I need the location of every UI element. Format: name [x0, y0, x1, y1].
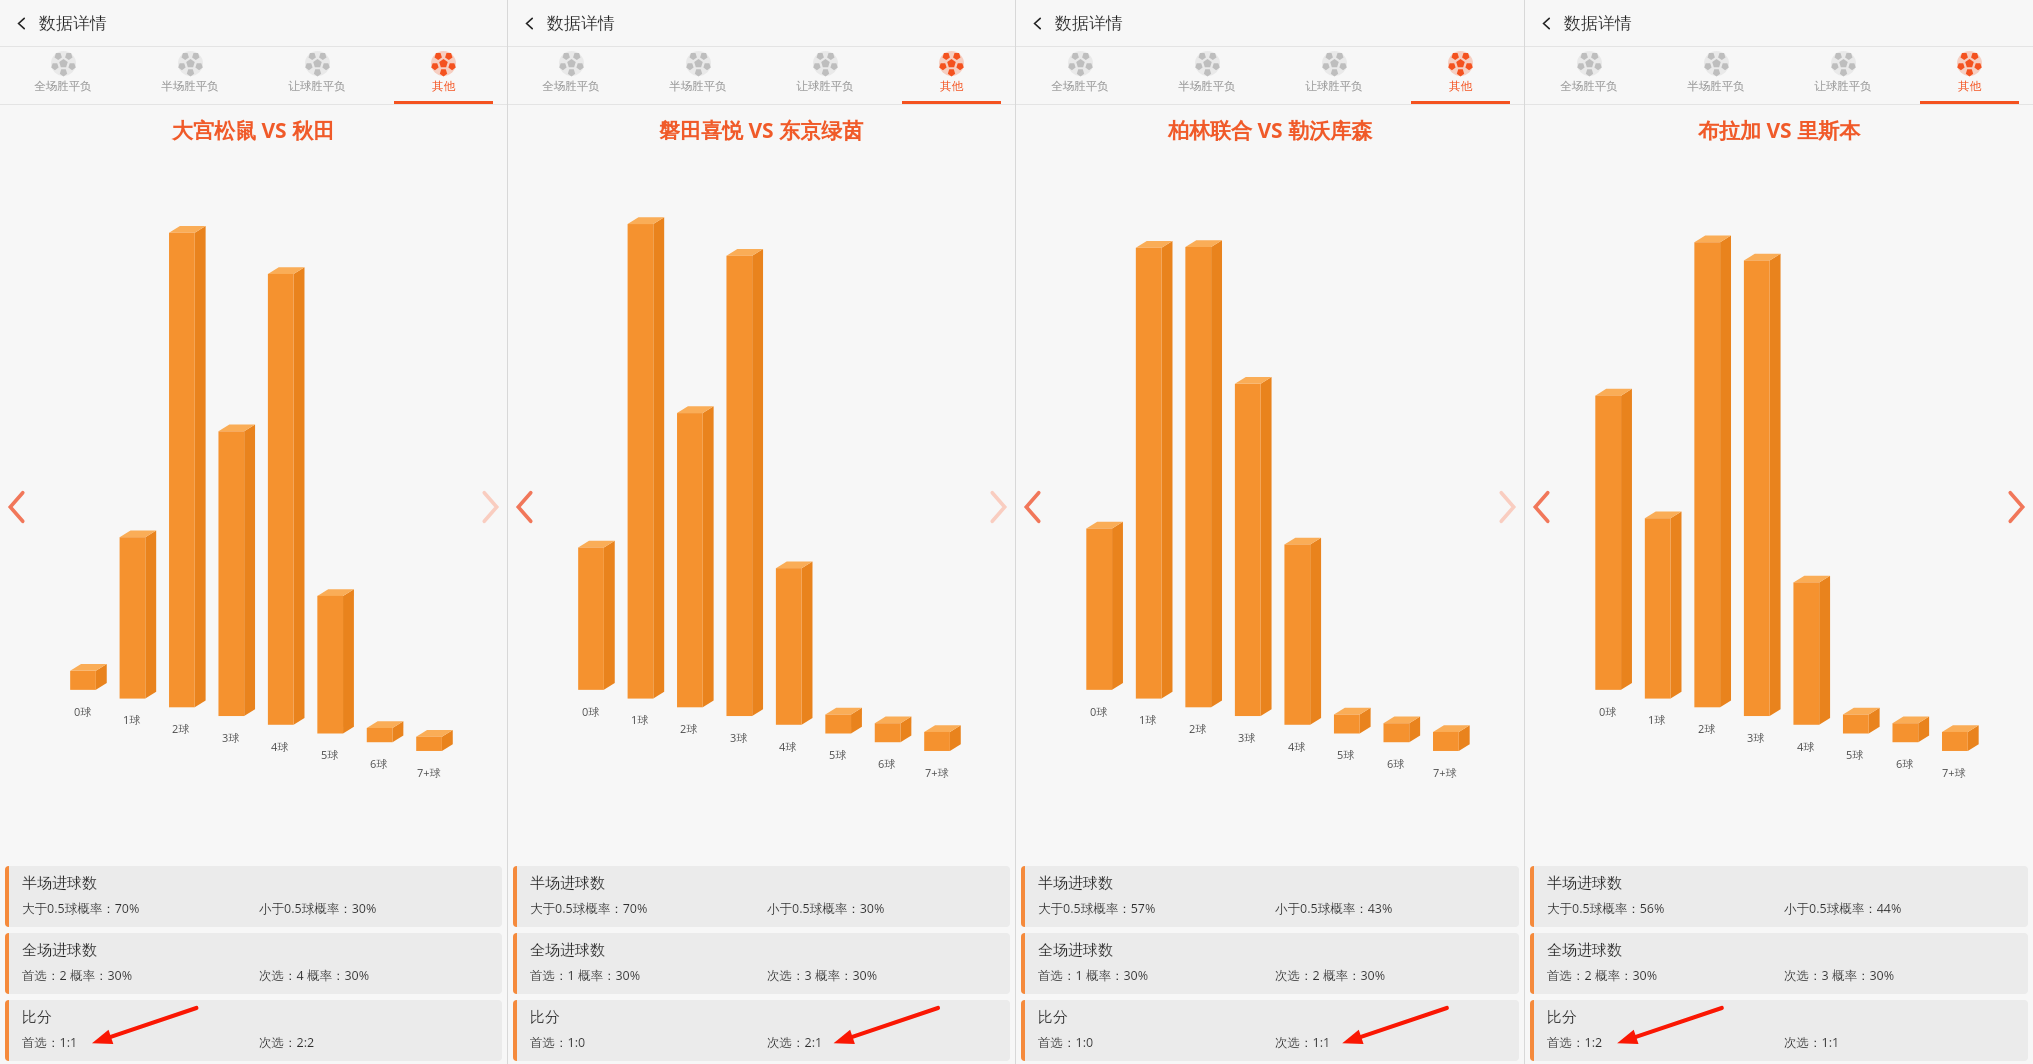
- staticText: 全场胜平负: [1560, 79, 1618, 93]
- button[interactable]: 全场进球数: [1530, 933, 2028, 994]
- staticText: 半场胜平负: [1687, 79, 1745, 93]
- staticText: 数据详情: [1055, 13, 1123, 34]
- button[interactable]: 半场进球数: [5, 866, 502, 927]
- button[interactable]: 半场胜平负: [634, 47, 761, 104]
- button[interactable]: 全场胜平负: [508, 47, 634, 104]
- button[interactable]: 让球胜平负: [1270, 47, 1397, 104]
- button[interactable]: Back: [508, 0, 1015, 46]
- button[interactable]: 比分: [1530, 1000, 2028, 1061]
- staticText: 让球胜平负: [288, 79, 346, 93]
- button[interactable]: 其他: [380, 47, 507, 104]
- staticText: 柏林联合 VS 勒沃库森: [1168, 116, 1373, 145]
- staticText: 全场进球数: [22, 941, 97, 960]
- staticText: 2球: [680, 721, 698, 736]
- staticText: 数据详情: [1564, 13, 1632, 34]
- staticText: 首选：1 概率：30%: [530, 967, 641, 984]
- staticText: 半场进球数: [530, 874, 605, 893]
- staticText: 全场胜平负: [542, 79, 600, 93]
- staticText: 小于0.5球概率：30%: [767, 900, 885, 917]
- staticText: 2球: [1698, 721, 1716, 736]
- button[interactable]: 半场进球数: [513, 866, 1010, 927]
- staticText: 半场胜平负: [1178, 79, 1236, 93]
- staticText: 首选：1:0: [530, 1034, 586, 1051]
- button[interactable]: 让球胜平负: [761, 47, 888, 104]
- other: Next: [478, 490, 502, 524]
- staticText: 全场胜平负: [34, 79, 92, 93]
- button[interactable]: 其他: [888, 47, 1015, 104]
- staticText: 小于0.5球概率：43%: [1275, 900, 1393, 917]
- staticText: 3球: [1747, 730, 1765, 745]
- button[interactable]: 半场进球数: [1021, 866, 1519, 927]
- staticText: 其他: [1958, 79, 1981, 93]
- button[interactable]: Back: [1016, 0, 1524, 46]
- staticText: 次选：3 概率：30%: [767, 967, 878, 984]
- button[interactable]: 全场胜平负: [0, 47, 126, 104]
- button[interactable]: 全场进球数: [1021, 933, 1519, 994]
- staticText: 6球: [370, 756, 388, 771]
- staticText: 3球: [730, 730, 748, 745]
- button[interactable]: 半场进球数: [1530, 866, 2028, 927]
- staticText: 全场进球数: [1547, 941, 1622, 960]
- staticText: 7+球: [1433, 765, 1457, 780]
- button[interactable]: 比分: [5, 1000, 502, 1061]
- button[interactable]: 让球胜平负: [253, 47, 380, 104]
- staticText: 小于0.5球概率：44%: [1784, 900, 1902, 917]
- staticText: 大于0.5球概率：57%: [1038, 900, 1156, 917]
- staticText: 比分: [22, 1008, 52, 1027]
- button[interactable]: 让球胜平负: [1779, 47, 1906, 104]
- staticText: 布拉加 VS 里斯本: [1698, 116, 1861, 145]
- other: Previous: [1021, 490, 1045, 524]
- staticText: 首选：1:0: [1038, 1034, 1094, 1051]
- button[interactable]: 其他: [1397, 47, 1524, 104]
- button[interactable]: 半场胜平负: [1143, 47, 1270, 104]
- button[interactable]: 其他: [1906, 47, 2033, 104]
- staticText: 7+球: [925, 765, 949, 780]
- staticText: 让球胜平负: [796, 79, 854, 93]
- staticText: 其他: [432, 79, 455, 93]
- button[interactable]: 全场进球数: [513, 933, 1010, 994]
- staticText: 首选：1:2: [1547, 1034, 1603, 1051]
- button[interactable]: 半场胜平负: [1652, 47, 1779, 104]
- staticText: 次选：2:1: [767, 1034, 823, 1051]
- staticText: 次选：2:2: [259, 1034, 315, 1051]
- staticText: 4球: [271, 739, 289, 754]
- staticText: 6球: [1896, 756, 1914, 771]
- staticText: 次选：1:1: [1784, 1034, 1840, 1051]
- button[interactable]: 全场胜平负: [1525, 47, 1652, 104]
- other: Previous: [1530, 490, 1554, 524]
- staticText: 全场进球数: [1038, 941, 1113, 960]
- button[interactable]: 比分: [513, 1000, 1010, 1061]
- staticText: 5球: [1337, 747, 1355, 762]
- button[interactable]: Back: [1525, 0, 2033, 46]
- staticText: 5球: [1846, 747, 1864, 762]
- staticText: 半场进球数: [22, 874, 97, 893]
- other: Next: [2004, 490, 2028, 524]
- staticText: 大于0.5球概率：70%: [530, 900, 648, 917]
- staticText: 其他: [940, 79, 963, 93]
- staticText: 次选：3 概率：30%: [1784, 967, 1895, 984]
- staticText: 次选：1:1: [1275, 1034, 1331, 1051]
- staticText: 6球: [878, 756, 896, 771]
- staticText: 0球: [74, 704, 92, 719]
- staticText: 1球: [1139, 712, 1157, 727]
- button[interactable]: 全场胜平负: [1016, 47, 1143, 104]
- other: Next: [1495, 490, 1519, 524]
- staticText: 大于0.5球概率：70%: [22, 900, 140, 917]
- staticText: 1球: [123, 712, 141, 727]
- staticText: 全场胜平负: [1051, 79, 1109, 93]
- staticText: 0球: [1599, 704, 1617, 719]
- other: Back: [521, 15, 538, 32]
- other: Previous: [513, 490, 537, 524]
- staticText: 小于0.5球概率：30%: [259, 900, 377, 917]
- staticText: 次选：2 概率：30%: [1275, 967, 1386, 984]
- staticText: 数据详情: [547, 13, 615, 34]
- staticText: 6球: [1387, 756, 1405, 771]
- button[interactable]: 比分: [1021, 1000, 1519, 1061]
- button[interactable]: 半场胜平负: [126, 47, 253, 104]
- staticText: 大宫松鼠 VS 秋田: [172, 116, 335, 145]
- button[interactable]: Back: [0, 0, 507, 46]
- staticText: 2球: [172, 721, 190, 736]
- staticText: 比分: [530, 1008, 560, 1027]
- staticText: 首选：2 概率：30%: [1547, 967, 1658, 984]
- button[interactable]: 全场进球数: [5, 933, 502, 994]
